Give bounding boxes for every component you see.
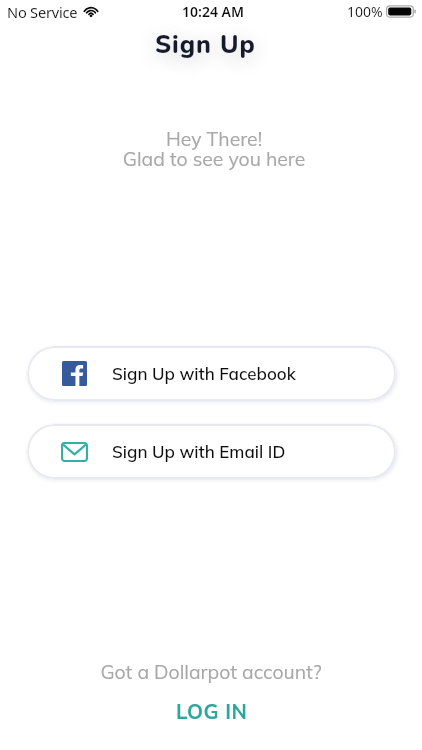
button[interactable]: Facebook <box>27 346 396 401</box>
button[interactable]: LOG IN <box>156 696 268 727</box>
staticText: LOG IN <box>176 699 248 724</box>
button[interactable]: Email <box>27 424 396 479</box>
other: Email <box>61 442 88 462</box>
staticText: Hey There! Glad to see you here <box>3 127 422 171</box>
other: Facebook <box>62 361 87 386</box>
staticText: Got a Dollarpot account? <box>0 660 422 684</box>
staticText: 10:24 AM <box>182 2 244 21</box>
staticText: 100% <box>347 2 383 21</box>
staticText: No Service <box>7 2 78 22</box>
staticText: Sign Up with Email ID <box>112 441 286 462</box>
staticText: Sign Up with Facebook <box>112 363 296 384</box>
staticText: Sign Up <box>155 28 256 62</box>
